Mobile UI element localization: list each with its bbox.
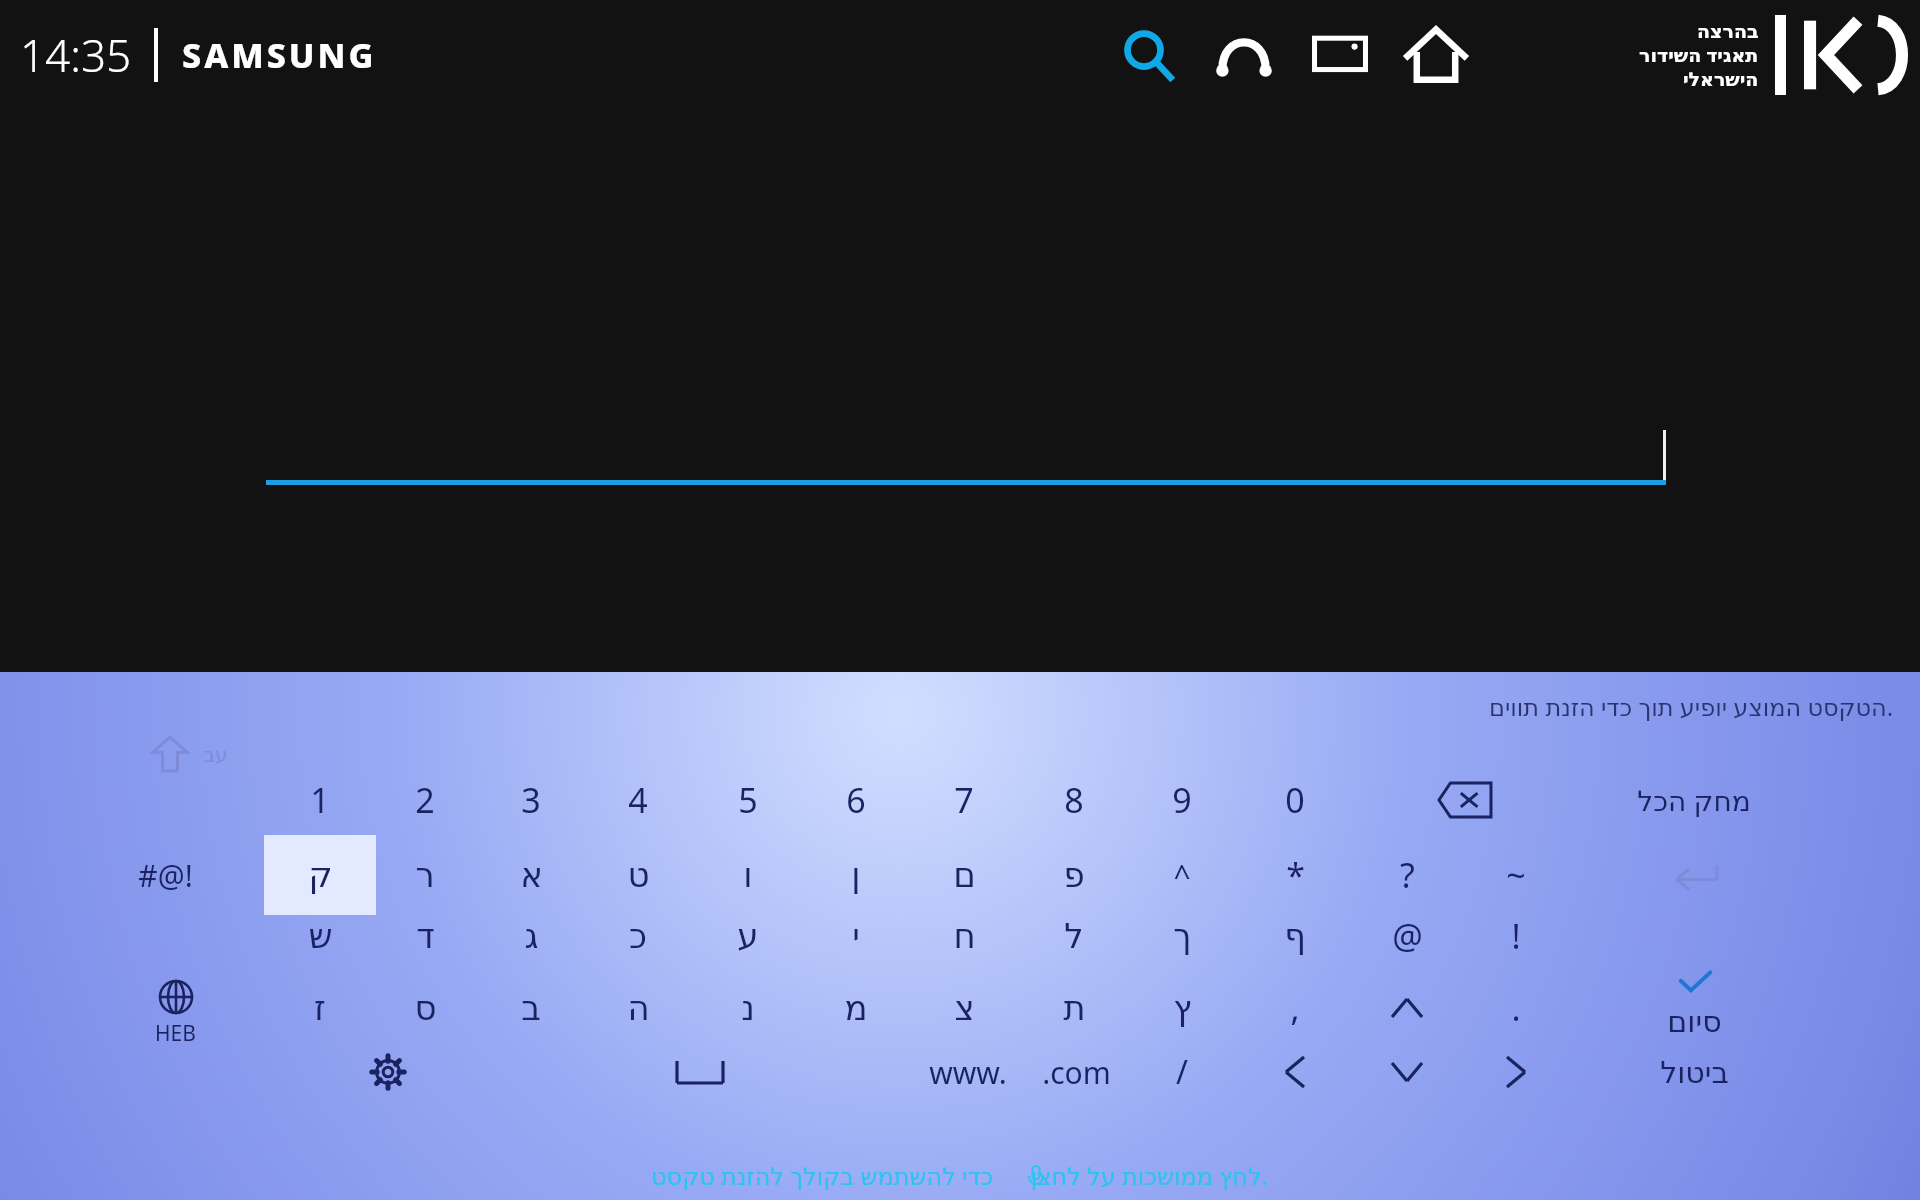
button[interactable]: 7 (909, 769, 1019, 831)
button[interactable]: . (1461, 977, 1571, 1039)
staticText: ת (1063, 988, 1086, 1028)
button[interactable]: כ (583, 905, 693, 967)
button[interactable]: Shift (115, 723, 225, 785)
button[interactable]: , (1240, 977, 1350, 1039)
staticText: ! (1511, 913, 1521, 959)
button[interactable]: ץ (1127, 977, 1237, 1039)
button[interactable]: Search (1100, 7, 1196, 103)
button[interactable]: ן (801, 844, 911, 906)
staticText: ^ (1173, 855, 1191, 896)
staticText: @ (1392, 913, 1423, 959)
button[interactable]: Space (620, 1041, 780, 1103)
staticText: מחק הכל (1637, 781, 1751, 819)
button[interactable]: ב (476, 977, 586, 1039)
button[interactable]: ~ (1461, 844, 1571, 906)
button[interactable]: ח (909, 905, 1019, 967)
staticText: ר (415, 855, 435, 895)
button[interactable]: צ (909, 977, 1019, 1039)
button[interactable]: ף (1240, 905, 1350, 967)
button[interactable]: נ (693, 977, 803, 1039)
button[interactable]: ^ (1127, 844, 1237, 906)
button[interactable]: ס (370, 977, 480, 1039)
staticText: ביטול (1660, 1055, 1729, 1090)
staticText: / (1176, 1050, 1188, 1094)
button[interactable]: ביטול (1604, 1041, 1784, 1103)
button[interactable]: מחק הכל (1589, 769, 1799, 831)
staticText: תאגיד השידור (1639, 42, 1759, 68)
button[interactable]: * (1240, 844, 1350, 906)
button[interactable]: א (476, 844, 586, 906)
button[interactable]: Enter (1619, 844, 1769, 906)
button[interactable]: ך (1127, 905, 1237, 967)
button[interactable]: .com (1011, 1041, 1141, 1103)
button[interactable]: Right (1461, 1041, 1571, 1103)
button[interactable] (264, 835, 376, 915)
staticText: 4 (628, 777, 648, 823)
staticText: 2 (415, 777, 435, 823)
staticText: * (1286, 852, 1305, 898)
staticText: HEB (155, 1019, 196, 1041)
button[interactable]: 1 (265, 769, 375, 831)
staticText: ץ (1173, 988, 1192, 1028)
staticText: ח (953, 916, 976, 956)
button[interactable]: 9 (1127, 769, 1237, 831)
button[interactable]: 5 (693, 769, 803, 831)
button[interactable]: Settings (333, 1041, 443, 1103)
staticText: מ (844, 988, 868, 1028)
button[interactable]: Left (1240, 1041, 1350, 1103)
button[interactable]: ז (265, 977, 375, 1039)
button[interactable]: ש (265, 905, 375, 967)
staticText: ~ (1506, 852, 1526, 898)
button[interactable]: ו (693, 844, 803, 906)
button[interactable]: / (1127, 1041, 1237, 1103)
button[interactable]: ט (583, 844, 693, 906)
staticText: י (852, 916, 860, 956)
button[interactable]: ! (1461, 905, 1571, 967)
button[interactable]: 6 (801, 769, 911, 831)
button[interactable]: Down (1352, 1041, 1462, 1103)
staticText: www. (929, 1052, 1007, 1093)
button[interactable]: Up (1352, 977, 1462, 1039)
staticText: ם (953, 855, 976, 895)
button[interactable]: ע (693, 905, 803, 967)
button[interactable]: 3 (476, 769, 586, 831)
staticText: בהרצה (1697, 20, 1759, 42)
button[interactable]: 0 (1240, 769, 1350, 831)
button[interactable]: 8 (1019, 769, 1129, 831)
button[interactable]: ק (265, 844, 375, 906)
button[interactable]: Source (1292, 7, 1388, 103)
button[interactable]: 2 (370, 769, 480, 831)
button[interactable]: 4 (583, 769, 693, 831)
staticText: 1 (310, 777, 330, 823)
staticText: נ (741, 988, 755, 1028)
button[interactable]: www. (903, 1041, 1033, 1103)
staticText: , (1290, 985, 1300, 1031)
staticText: . (1511, 985, 1521, 1031)
button[interactable]: @ (1352, 905, 1462, 967)
button[interactable]: ר (370, 844, 480, 906)
button[interactable]: ד (370, 905, 480, 967)
button[interactable]: עב (160, 723, 270, 785)
button[interactable]: #@! (110, 844, 220, 906)
button[interactable]: ה (583, 977, 693, 1039)
button[interactable]: ת (1019, 977, 1129, 1039)
staticText: ל (1064, 916, 1084, 956)
staticText: ע (737, 916, 759, 956)
button[interactable]: ל (1019, 905, 1129, 967)
button[interactable]: Audio (1196, 7, 1292, 103)
button[interactable]: ם (909, 844, 1019, 906)
staticText: #@! (138, 855, 193, 896)
button[interactable]: ג (476, 905, 586, 967)
button[interactable]: סיום (1604, 949, 1784, 1059)
button[interactable]: Home (1388, 7, 1484, 103)
staticText: 14:35 (20, 25, 132, 85)
button[interactable]: Change language (120, 979, 230, 1041)
button[interactable]: מ (801, 977, 911, 1039)
staticText: ד (416, 916, 435, 956)
button[interactable]: Backspace (1410, 769, 1520, 831)
button[interactable]: פ (1019, 844, 1129, 906)
staticText: צ (954, 988, 975, 1028)
button[interactable]: י (801, 905, 911, 967)
button[interactable]: ? (1352, 844, 1462, 906)
staticText: הישראלי (1683, 68, 1759, 90)
